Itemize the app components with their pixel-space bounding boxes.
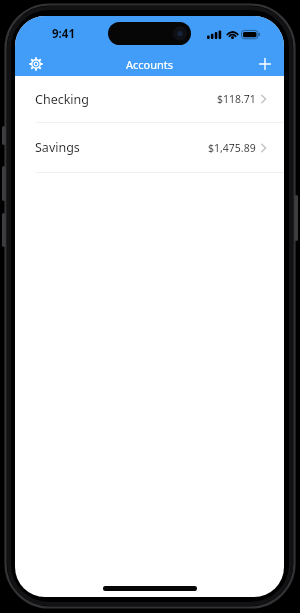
staticText: 9:41 [52,26,75,42]
staticText: $1,475.89 [208,141,256,155]
staticText: $118.71 [217,92,256,106]
button[interactable] [255,54,275,74]
staticText: Savings [35,139,80,156]
button[interactable]: Savings [15,123,284,172]
button[interactable] [26,54,46,74]
staticText: Accounts [126,57,174,72]
staticText: Checking [35,91,89,108]
button[interactable]: Checking [15,76,284,122]
